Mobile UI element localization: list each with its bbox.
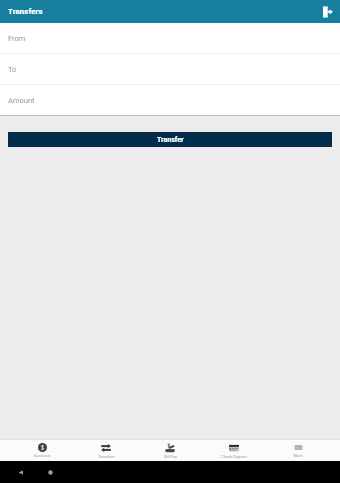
- button[interactable]: Logout: [319, 3, 337, 21]
- button[interactable]: More: [266, 440, 330, 461]
- staticText: To: [8, 65, 17, 74]
- button[interactable]: Transfer: [9, 133, 331, 146]
- staticText: Check Deposit: [221, 454, 247, 459]
- staticText: Transfers: [8, 7, 43, 16]
- button[interactable]: Transfers: [74, 440, 138, 461]
- staticText: Transfers: [98, 454, 115, 459]
- staticText: Bill Pay: [164, 454, 177, 459]
- staticText: More: [293, 453, 303, 458]
- button[interactable]: From: [0, 23, 340, 53]
- button[interactable]: Check Deposit: [202, 440, 266, 461]
- other: Home: [46, 468, 55, 477]
- staticText: From: [8, 34, 26, 43]
- staticText: Amount: [8, 96, 35, 105]
- button[interactable]: Amount: [0, 85, 340, 115]
- button[interactable]: Accounts: [10, 440, 74, 461]
- staticText: Accounts: [34, 453, 51, 458]
- other: Back: [16, 468, 25, 477]
- button[interactable]: Bill Pay: [138, 440, 202, 461]
- staticText: Transfer: [157, 136, 184, 144]
